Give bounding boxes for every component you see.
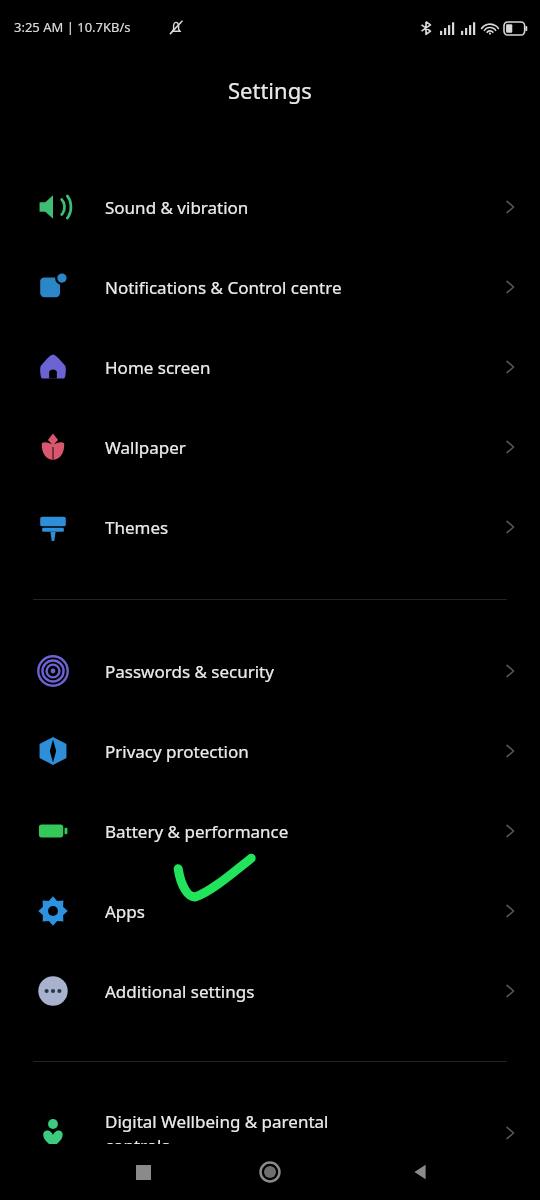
button[interactable]: Recents [118,1147,168,1197]
button[interactable]: Additional settings [0,951,540,1031]
button[interactable]: Wallpaper [0,407,540,487]
button[interactable]: Apps [0,871,540,951]
staticText: Sound & vibration [105,196,500,219]
button[interactable]: Digital Wellbeing & parental controls [0,1093,540,1173]
button[interactable]: Home [245,1147,295,1197]
staticText: Passwords & security [105,660,500,683]
staticText: Wallpaper [105,436,500,459]
button[interactable]: Home screen [0,327,540,407]
button[interactable]: Themes [0,487,540,567]
staticText: Settings [228,75,312,105]
button[interactable]: Sound & vibration [0,167,540,247]
staticText: 3:25 AM | 10.7KB/s [14,18,131,36]
staticText: Additional settings [105,980,500,1003]
button[interactable]: Back [395,1147,445,1197]
staticText: Digital Wellbeing & parental controls [105,1110,500,1157]
staticText: Home screen [105,356,500,379]
button[interactable]: Privacy protection [0,711,540,791]
staticText: Apps [105,900,500,923]
staticText: Privacy protection [105,740,500,763]
button[interactable]: Battery & performance [0,791,540,871]
staticText: Notifications & Control centre [105,276,500,299]
button[interactable]: Notifications & Control centre [0,247,540,327]
staticText: Battery & performance [105,820,500,843]
button[interactable]: Passwords & security [0,631,540,711]
staticText: Themes [105,516,500,539]
